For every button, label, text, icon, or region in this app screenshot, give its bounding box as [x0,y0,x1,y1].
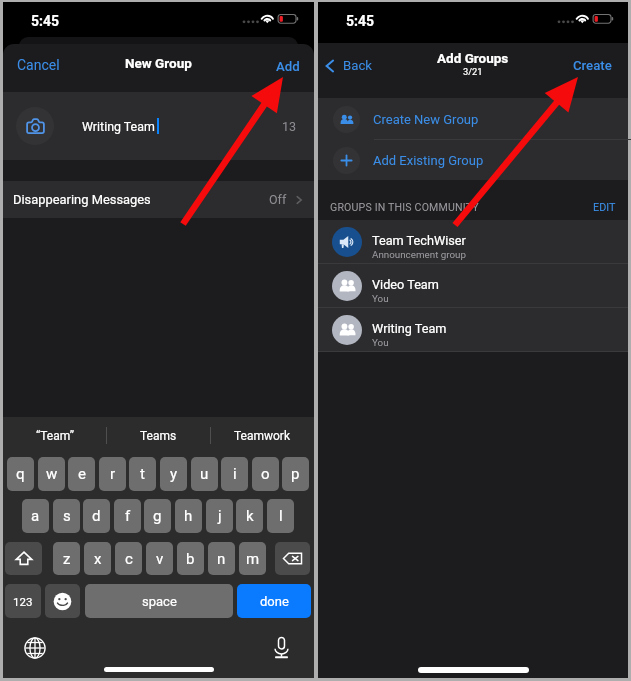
staticText: EDIT [593,201,616,214]
button[interactable]: e [68,457,95,491]
button[interactable]: EDIT [589,197,620,218]
button[interactable]: j [206,499,233,533]
staticText: c [125,550,133,568]
button[interactable]: t [129,457,156,491]
staticText: GROUPS IN THIS COMMUNITY [330,201,479,213]
button[interactable]: Dictate [270,636,293,659]
button[interactable]: z [53,542,80,575]
button[interactable]: Teamwork [211,419,314,452]
button[interactable]: “Team” [3,419,106,452]
button[interactable]: Add [270,54,306,79]
staticText: Back [343,58,372,73]
staticText: “Team” [36,429,74,443]
staticText: 13 [282,119,297,134]
staticText: space [142,594,177,609]
staticText: Announcement group [372,249,466,260]
button[interactable]: Cancel [11,52,66,78]
staticText: b [186,550,195,568]
staticText: y [170,465,178,483]
button[interactable]: Writing Team [318,308,628,352]
staticText: f [125,507,131,525]
staticText: Add Existing Group [373,153,484,168]
staticText: x [94,550,102,568]
button[interactable]: m [239,542,266,575]
staticText: Video Team [372,277,439,292]
staticText: Teams [140,429,177,443]
staticText: Team TechWiser [372,233,466,248]
button[interactable]: i [221,457,248,491]
staticText: 5:45 [31,13,60,29]
button[interactable]: Add Existing Group [318,140,628,180]
button[interactable]: f [114,499,141,533]
staticText: Writing Team [82,119,155,134]
staticText: Add Groups [437,50,509,66]
button[interactable]: c [115,542,142,575]
button[interactable]: g [144,499,171,533]
button[interactable]: d [83,499,110,533]
button[interactable]: w [38,457,65,491]
staticText: w [46,465,58,483]
staticText: done [260,594,289,609]
staticText: e [78,465,86,483]
staticText: v [156,550,164,568]
button[interactable]: space [85,584,233,618]
staticText: o [261,465,270,483]
button[interactable]: Create New Group [318,98,628,140]
staticText: n [217,550,226,568]
button[interactable]: Video Team [318,264,628,308]
button[interactable]: v [146,542,173,575]
staticText: 123 [13,595,33,608]
staticText: i [233,465,237,483]
button[interactable]: a [22,499,49,533]
staticText: l [279,507,283,525]
staticText: h [184,507,193,525]
staticText: Create [573,58,612,73]
staticText: Disappearing Messages [13,192,151,207]
button[interactable]: Teams [107,419,210,452]
staticText: Writing Team [372,321,447,336]
staticText: j [218,507,222,525]
button[interactable]: 123 [5,584,41,618]
staticText: d [92,507,101,525]
staticText: z [63,550,71,568]
button[interactable]: Create [569,53,616,78]
button[interactable]: q [7,457,34,491]
staticText: a [31,507,40,525]
button[interactable]: p [282,457,309,491]
button[interactable]: Writing Team [3,92,314,160]
button[interactable]: y [160,457,187,491]
button[interactable]: Team TechWiser [318,220,628,264]
staticText: q [16,465,25,483]
button[interactable]: o [252,457,279,491]
button[interactable]: Disappearing Messages [3,181,314,218]
button[interactable]: r [99,457,126,491]
staticText: g [153,507,162,525]
staticText: New Group [125,55,192,71]
button[interactable]: l [267,499,294,533]
button[interactable]: Backspace [275,542,310,575]
staticText: You [372,293,389,304]
button[interactable]: Change keyboard [24,637,46,659]
button[interactable]: done [237,584,311,618]
staticText: Cancel [17,57,60,73]
staticText: Off [269,192,287,207]
button[interactable]: x [84,542,111,575]
button[interactable]: k [236,499,263,533]
button[interactable]: Shift [5,542,42,575]
button[interactable]: u [191,457,218,491]
button[interactable]: Back [319,53,376,78]
button[interactable]: s [53,499,80,533]
staticText: 5:45 [346,13,375,29]
button[interactable]: h [175,499,202,533]
staticText: Teamwork [234,429,291,443]
button[interactable]: n [208,542,235,575]
staticText: r [110,465,116,483]
staticText: s [63,507,71,525]
staticText: u [200,465,209,483]
staticText: k [246,507,254,525]
staticText: You [372,337,389,348]
button[interactable]: Emoji [45,584,80,618]
staticText: 3/21 [463,66,483,77]
button[interactable]: b [177,542,204,575]
staticText: Create New Group [373,112,479,127]
